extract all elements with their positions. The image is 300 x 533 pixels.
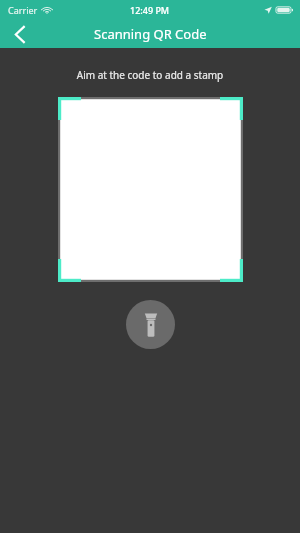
staticText: Carrier	[8, 4, 38, 16]
staticText: Aim at the code to add a stamp	[0, 68, 300, 82]
button[interactable]: Back	[0, 20, 40, 48]
staticText: 12:49 PM	[130, 4, 170, 16]
button[interactable]: Toggle flashlight	[126, 300, 175, 349]
staticText: Scanning QR Code	[94, 25, 207, 43]
